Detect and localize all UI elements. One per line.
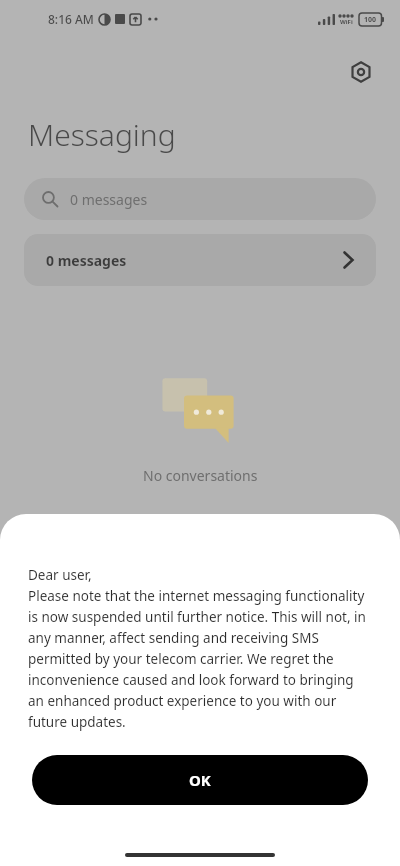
button[interactable]: 0 messages	[24, 234, 376, 286]
staticText: Messaging	[28, 114, 176, 155]
staticText: Dear user, Please note that the internet…	[28, 566, 372, 731]
staticText: No conversations	[143, 466, 258, 485]
staticText: 0 messages	[70, 190, 148, 209]
staticText: 0 messages	[46, 251, 127, 270]
button[interactable]: OK	[32, 755, 368, 805]
staticText: WiFi	[340, 18, 353, 26]
button[interactable]: 0 messages	[24, 178, 376, 220]
button[interactable]: Settings	[344, 55, 378, 89]
staticText: 100	[364, 15, 377, 25]
staticText: 8:16 AM	[48, 11, 94, 27]
staticText: OK	[189, 770, 211, 790]
